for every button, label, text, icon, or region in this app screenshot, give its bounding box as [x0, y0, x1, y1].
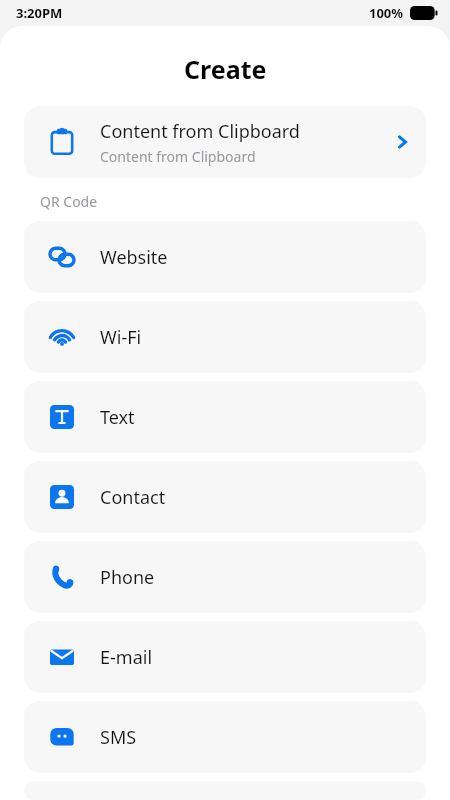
staticText: 3:20PM: [16, 4, 63, 22]
button[interactable]: Phone: [24, 541, 426, 613]
button[interactable]: Website: [24, 221, 426, 293]
button[interactable]: Content from Clipboard: [24, 106, 426, 178]
staticText: 100%: [369, 4, 404, 22]
staticText: Content from Clipboard: [100, 119, 300, 144]
staticText: Contact: [100, 485, 166, 510]
button[interactable]: E-mail: [24, 621, 426, 693]
button[interactable]: Contact: [24, 461, 426, 533]
staticText: Create: [184, 52, 267, 86]
staticText: E-mail: [100, 645, 153, 670]
staticText: QR Code: [40, 192, 98, 211]
staticText: Wi-Fi: [100, 325, 142, 350]
staticText: Text: [100, 405, 135, 430]
staticText: SMS: [100, 725, 137, 750]
staticText: Content from Clipboard: [100, 147, 256, 166]
staticText: Website: [100, 245, 168, 270]
button[interactable]: Text: [24, 381, 426, 453]
button[interactable]: SMS: [24, 701, 426, 773]
button[interactable]: Wi-Fi: [24, 301, 426, 373]
staticText: Phone: [100, 565, 155, 590]
